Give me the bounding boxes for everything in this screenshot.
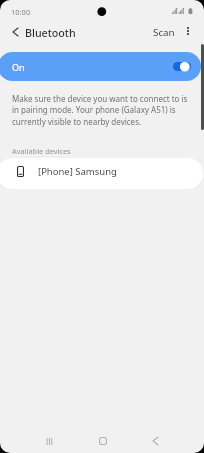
staticText: [Phone] Samsung — [38, 165, 117, 178]
staticText: Scan — [153, 26, 175, 39]
button[interactable]: Navigate up — [4, 20, 27, 43]
staticText: 10:00 — [11, 7, 31, 17]
button[interactable]: Back — [142, 429, 168, 453]
button[interactable]: Recents — [36, 429, 62, 453]
button[interactable]: [Phone] Samsung — [0, 158, 203, 189]
button[interactable]: On — [0, 52, 201, 81]
staticText: Bluetooth — [25, 26, 76, 41]
staticText: On — [12, 61, 25, 73]
button[interactable]: More options — [179, 20, 197, 42]
button[interactable]: Home — [90, 429, 116, 453]
staticText: Available devices — [12, 146, 71, 156]
staticText: Make sure the device you want to connect… — [12, 93, 192, 128]
button[interactable]: Scan — [149, 22, 179, 42]
